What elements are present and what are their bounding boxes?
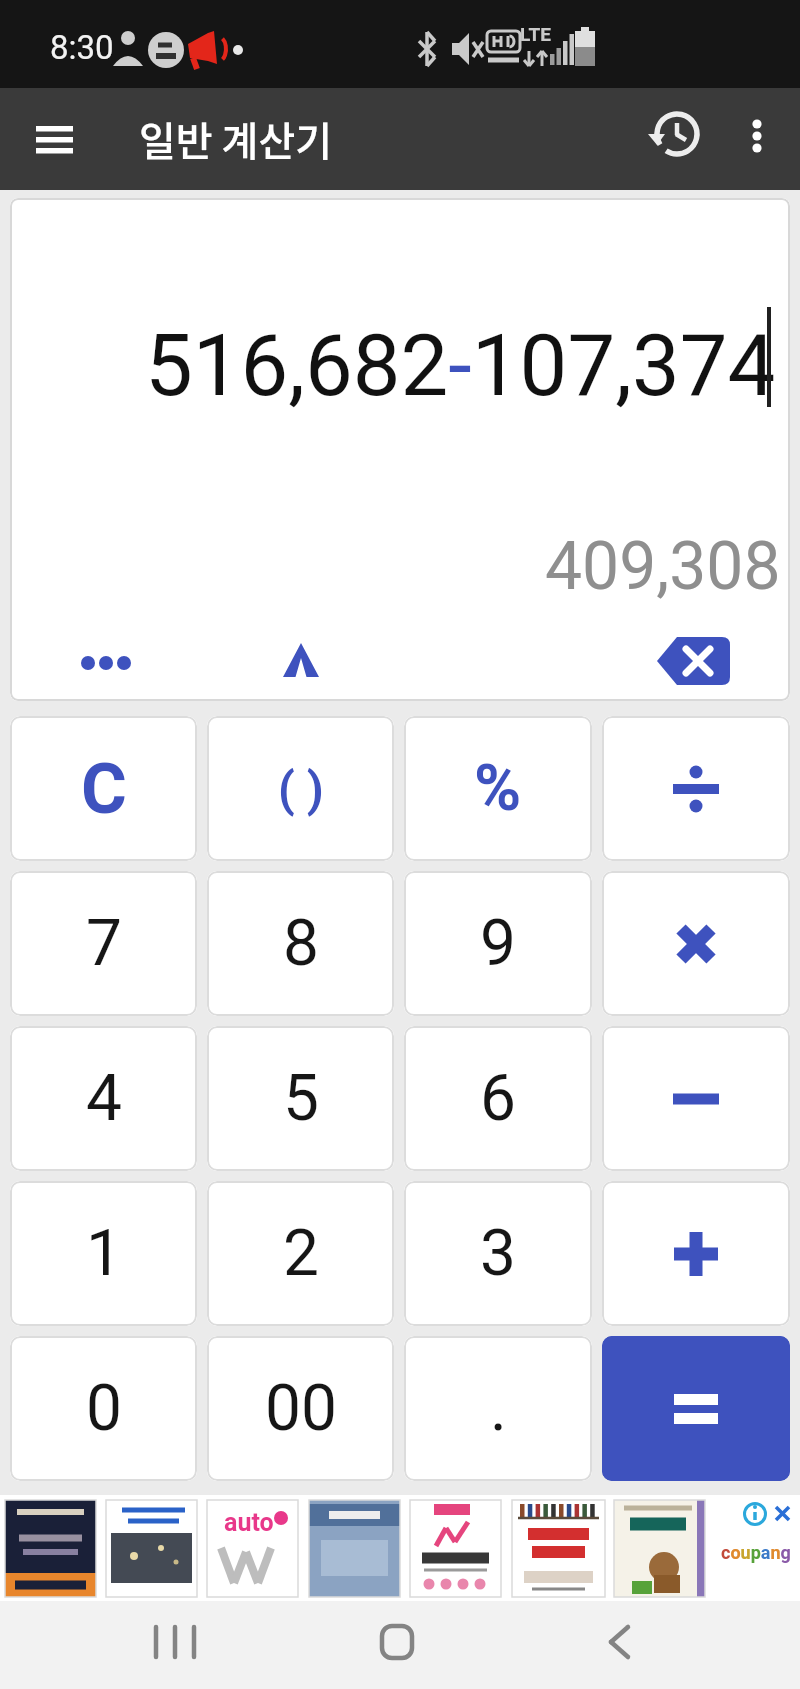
button[interactable]: C [10, 716, 197, 861]
staticText: 9 [480, 906, 516, 981]
staticText: C [81, 748, 127, 830]
staticText: 409,308 [545, 528, 781, 605]
button[interactable]: auto [0, 1495, 800, 1601]
staticText: 8:30 [50, 28, 114, 67]
staticText: 7 [86, 906, 122, 981]
staticText: 516,682-107,374 [145, 316, 776, 416]
button[interactable] [200, 623, 310, 693]
button[interactable]: 2 [207, 1181, 394, 1326]
staticText: LTE [520, 23, 551, 45]
button[interactable]: 00 [207, 1336, 394, 1481]
staticText: 4 [86, 1061, 122, 1136]
staticText: ( ) [278, 761, 324, 817]
staticText: 2 [283, 1216, 319, 1291]
button[interactable]: 1 [10, 1181, 197, 1326]
button[interactable]: 4 [10, 1026, 197, 1171]
staticText: 3 [480, 1216, 516, 1291]
button[interactable]: 5 [207, 1026, 394, 1171]
button[interactable]: 0 [10, 1336, 197, 1481]
button[interactable] [602, 1181, 790, 1326]
button[interactable]: 3 [404, 1181, 592, 1326]
button[interactable] [645, 100, 709, 178]
button[interactable] [602, 871, 790, 1016]
button[interactable] [586, 1613, 650, 1677]
button[interactable] [10, 623, 130, 693]
button[interactable] [602, 716, 790, 861]
staticText: 일반 계산기 [139, 110, 332, 168]
button[interactable]: 6 [404, 1026, 592, 1171]
button[interactable] [602, 1336, 790, 1481]
staticText: 6 [480, 1061, 516, 1136]
button[interactable]: 9 [404, 871, 592, 1016]
staticText: coupang [721, 1542, 791, 1563]
staticText: 1 [86, 1216, 122, 1291]
staticText: 8 [283, 906, 319, 981]
button[interactable] [143, 1613, 207, 1677]
staticText: auto [224, 1508, 274, 1537]
staticText: % [474, 751, 522, 826]
staticText: 5 [283, 1061, 319, 1136]
button[interactable]: % [404, 716, 592, 861]
staticText: 0 [86, 1371, 122, 1446]
button[interactable] [22, 111, 86, 167]
button[interactable]: 8 [207, 871, 394, 1016]
button[interactable] [602, 1026, 790, 1171]
button[interactable] [570, 623, 700, 693]
button[interactable]: 7 [10, 871, 197, 1016]
staticText: . [490, 1371, 507, 1446]
button[interactable] [365, 1613, 429, 1677]
staticText: 00 [265, 1371, 337, 1446]
button[interactable] [731, 101, 783, 177]
button[interactable]: ( ) [207, 716, 394, 861]
button[interactable]: . [404, 1336, 592, 1481]
